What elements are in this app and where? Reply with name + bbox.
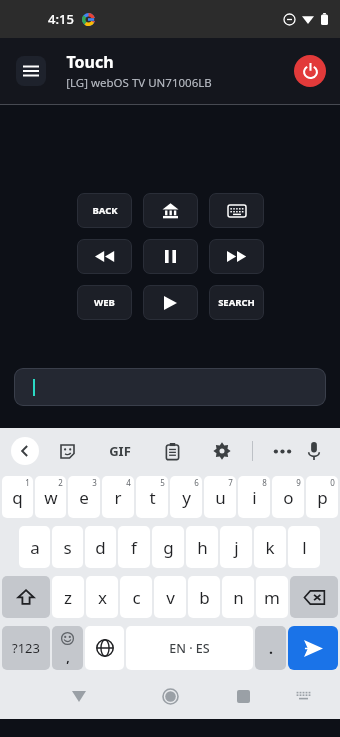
button[interactable]: More options <box>271 446 294 457</box>
button[interactable]: . <box>255 626 286 670</box>
staticText: b <box>199 586 210 609</box>
button[interactable]: Backspace <box>290 576 338 618</box>
button[interactable]: EN · ES <box>126 626 253 670</box>
staticText: h <box>197 536 208 559</box>
button[interactable]: Settings <box>210 439 234 463</box>
staticText: t <box>149 486 156 509</box>
button[interactable]: Menu <box>16 56 46 86</box>
staticText: s <box>63 536 72 559</box>
staticText: 0 <box>330 477 335 488</box>
button[interactable]: Home <box>143 193 198 228</box>
button[interactable]: o <box>272 476 304 518</box>
button[interactable]: n <box>222 576 254 618</box>
button[interactable]: Rewind <box>77 239 132 274</box>
staticText: 4 <box>126 477 131 488</box>
staticText: k <box>265 536 275 559</box>
staticText: x <box>98 586 107 609</box>
button[interactable]: GIF <box>105 438 135 464</box>
button[interactable]: f <box>118 526 150 568</box>
staticText: a <box>30 536 40 559</box>
button[interactable]: m <box>256 576 288 618</box>
staticText: p <box>317 486 328 509</box>
button[interactable]: Emoji <box>52 626 83 670</box>
button[interactable]: Stickers <box>56 440 79 463</box>
button[interactable]: g <box>152 526 184 568</box>
button[interactable]: Home <box>153 679 187 713</box>
staticText: ?123 <box>12 639 40 657</box>
staticText: WEB <box>94 296 115 309</box>
button[interactable]: y <box>170 476 202 518</box>
button[interactable]: Fast forward <box>209 239 264 274</box>
button[interactable]: a <box>19 526 50 568</box>
button[interactable]: j <box>220 526 252 568</box>
button[interactable]: p <box>306 476 338 518</box>
staticText: SEARCH <box>218 296 255 309</box>
staticText: [LG] webOS TV UN71006LB <box>66 75 212 91</box>
staticText: 5 <box>160 477 165 488</box>
staticText: EN · ES <box>169 640 210 657</box>
staticText: Touch <box>66 51 114 73</box>
staticText: v <box>166 586 175 609</box>
button[interactable]: Language <box>85 626 124 670</box>
staticText: e <box>79 486 89 509</box>
staticText: r <box>114 486 122 509</box>
button[interactable]: z <box>52 576 84 618</box>
button[interactable]: Send <box>288 626 338 670</box>
staticText: l <box>302 536 307 559</box>
staticText: m <box>264 586 280 609</box>
button[interactable]: ?123 <box>2 626 50 670</box>
button[interactable]: SEARCH <box>209 285 264 320</box>
button[interactable]: d <box>85 526 116 568</box>
button[interactable]: c <box>120 576 152 618</box>
button[interactable]: e <box>68 476 100 518</box>
button[interactable]: u <box>204 476 236 518</box>
button[interactable]: Back <box>11 437 39 465</box>
staticText: 1 <box>25 477 30 488</box>
button[interactable]: v <box>154 576 186 618</box>
button[interactable]: x <box>86 576 118 618</box>
button[interactable]: Keyboard <box>209 193 264 228</box>
button[interactable]: Clipboard <box>161 440 184 463</box>
staticText: , <box>66 649 70 665</box>
button[interactable]: BACK <box>77 193 132 228</box>
staticText: f <box>131 536 137 559</box>
button[interactable]: WEB <box>77 285 132 320</box>
staticText: 8 <box>262 477 267 488</box>
staticText: . <box>269 639 273 658</box>
button[interactable]: Power <box>294 55 326 87</box>
button[interactable]: k <box>254 526 286 568</box>
staticText: j <box>234 536 239 559</box>
button[interactable]: Play <box>143 285 198 320</box>
button[interactable]: Voice input <box>304 438 324 464</box>
staticText: 2 <box>58 477 63 488</box>
staticText: 3 <box>92 477 97 488</box>
button[interactable]: h <box>186 526 218 568</box>
staticText: i <box>252 486 257 509</box>
staticText: GIF <box>109 442 131 460</box>
staticText: 9 <box>296 477 301 488</box>
button[interactable]: w <box>35 476 66 518</box>
button[interactable]: Recents <box>226 679 260 713</box>
staticText: 6 <box>194 477 199 488</box>
staticText: q <box>12 486 23 509</box>
staticText: w <box>44 486 58 509</box>
staticText: z <box>64 586 72 609</box>
staticText: c <box>132 586 141 609</box>
button[interactable]: Shift <box>2 576 50 618</box>
button[interactable]: l <box>288 526 320 568</box>
button[interactable]: r <box>102 476 134 518</box>
button[interactable]: q <box>2 476 33 518</box>
button[interactable]: Back <box>62 679 96 713</box>
staticText: 7 <box>228 477 233 488</box>
button[interactable]: s <box>52 526 83 568</box>
button[interactable]: t <box>136 476 168 518</box>
button[interactable] <box>14 368 326 406</box>
staticText: d <box>95 536 106 559</box>
button[interactable]: Pause <box>143 239 198 274</box>
other: Keyboard active <box>290 683 316 709</box>
button[interactable]: b <box>188 576 220 618</box>
staticText: n <box>233 586 244 609</box>
staticText: y <box>182 486 191 509</box>
button[interactable]: i <box>238 476 270 518</box>
staticText: u <box>215 486 226 509</box>
